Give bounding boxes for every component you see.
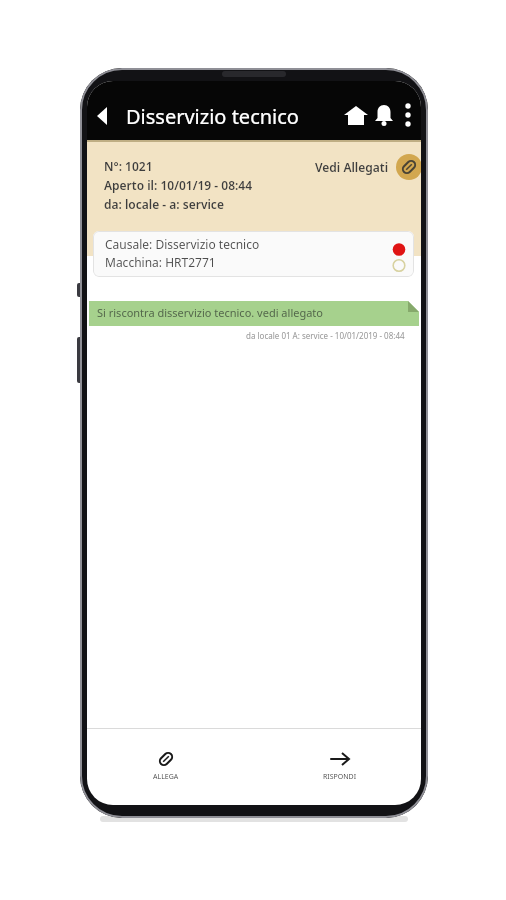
staticText: Aperto il: 10/01/19 - 08:44: [104, 177, 253, 193]
staticText: N°: 1021: [104, 158, 153, 174]
button[interactable]: [91, 103, 115, 129]
button[interactable]: RISPONDI: [311, 749, 369, 791]
button[interactable]: Vedi Allegati: [315, 154, 421, 180]
button[interactable]: ALLEGA: [137, 749, 195, 791]
button[interactable]: Si riscontra disservizio tecnico. vedi a…: [89, 301, 419, 326]
staticText: da locale 01 A: service - 10/01/2019 - 0…: [246, 330, 405, 341]
button[interactable]: Causale: Disservizio tecnico: [93, 231, 414, 277]
button[interactable]: [341, 103, 371, 129]
button[interactable]: [371, 103, 397, 129]
staticText: Vedi Allegati: [315, 159, 389, 175]
staticText: ALLEGA: [153, 772, 179, 782]
staticText: Macchina: HRT2771: [105, 254, 216, 270]
staticText: Si riscontra disservizio tecnico. vedi a…: [97, 305, 323, 320]
button[interactable]: [399, 99, 417, 131]
staticText: Disservizio tecnico: [126, 103, 299, 130]
staticText: da: locale - a: service: [104, 196, 224, 212]
staticText: Causale: Disservizio tecnico: [105, 236, 260, 252]
staticText: RISPONDI: [323, 772, 357, 782]
